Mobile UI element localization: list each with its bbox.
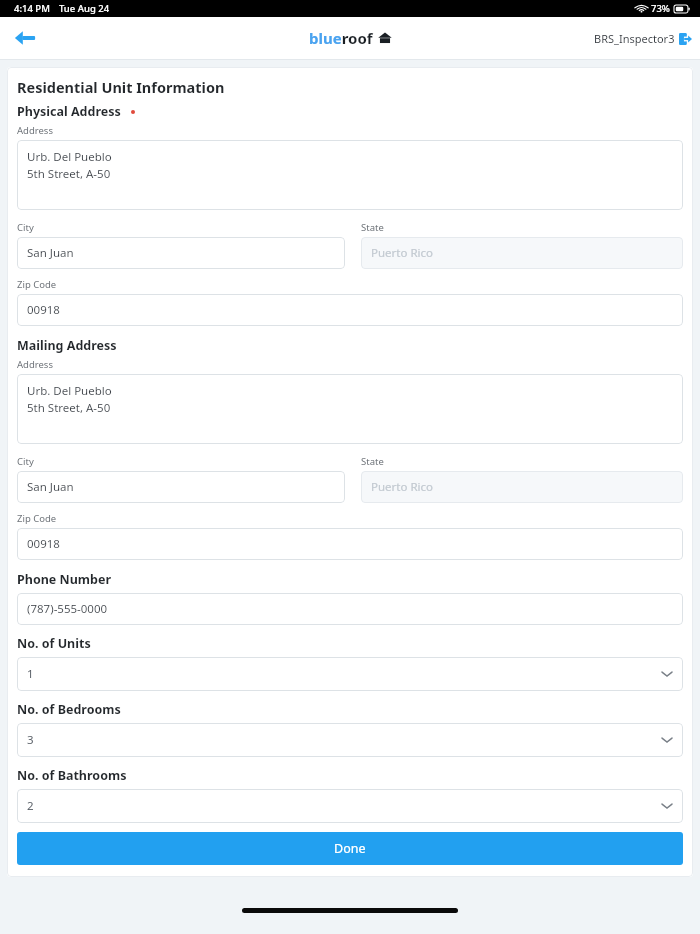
button[interactable]: blueroof [309,28,392,48]
button[interactable]: 3 [17,723,683,757]
staticText: 5th Street, A-50 [27,166,111,182]
staticText: 00918 [27,536,60,552]
staticText: BRS_Inspector3 [594,31,675,46]
button[interactable]: Done [17,832,683,865]
staticText: Tue Aug 24 [59,2,110,15]
staticText: 4:14 PM [14,2,50,15]
staticText: No. of Bathrooms [17,767,127,784]
button[interactable]: Urb. Del Pueblo [17,140,683,210]
staticText: Mailing Address [17,337,117,354]
staticText: Address [17,358,53,371]
staticText: Zip Code [17,512,57,525]
staticText: 73% [651,2,670,15]
staticText: blueroof [309,28,373,48]
staticText: 1 [27,666,34,682]
button[interactable]: Back [6,19,44,57]
staticText: Urb. Del Pueblo [27,149,112,165]
button[interactable]: 1 [17,657,683,691]
staticText: Phone Number [17,571,111,588]
staticText: Puerto Rico [371,245,433,261]
staticText: City [17,221,34,234]
staticText: San Juan [27,245,74,261]
staticText: State [361,455,384,468]
staticText: City [17,455,34,468]
staticText: Physical Address [17,103,121,120]
staticText: No. of Units [17,635,91,652]
staticText: Urb. Del Pueblo [27,383,112,399]
staticText: No. of Bedrooms [17,701,121,718]
staticText: 3 [27,732,34,748]
staticText: Puerto Rico [371,479,433,495]
button[interactable]: (787)-555-0000 [17,593,683,625]
button[interactable]: San Juan [17,237,345,269]
staticText: Residential Unit Information [17,77,225,97]
button[interactable]: 2 [17,789,683,823]
staticText: Zip Code [17,278,57,291]
staticText: State [361,221,384,234]
staticText: Address [17,124,53,137]
button[interactable]: San Juan [17,471,345,503]
staticText: 2 [27,798,34,814]
staticText: (787)-555-0000 [27,601,108,617]
button[interactable]: BRS_Inspector3 [594,31,692,46]
button[interactable]: 00918 [17,528,683,560]
staticText: Done [334,840,366,857]
button[interactable]: Urb. Del Pueblo [17,374,683,444]
button[interactable]: 00918 [17,294,683,326]
staticText: San Juan [27,479,74,495]
staticText: 5th Street, A-50 [27,400,111,416]
staticText: 00918 [27,302,60,318]
